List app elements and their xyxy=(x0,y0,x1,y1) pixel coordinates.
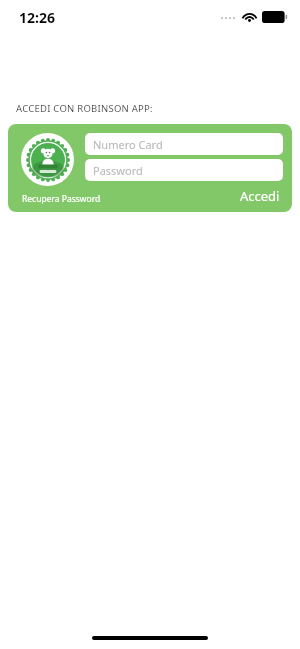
button[interactable]: Numero Card xyxy=(85,133,283,155)
staticText: Password xyxy=(93,163,143,178)
staticText: Recupera Password xyxy=(22,193,101,205)
button[interactable]: Recupera Password xyxy=(22,192,101,206)
button[interactable]: Password xyxy=(85,159,283,181)
button[interactable]: Accedi xyxy=(240,186,280,206)
staticText: Numero Card xyxy=(93,137,163,152)
staticText: ACCEDI CON ROBINSON APP: xyxy=(16,102,153,115)
staticText: Accedi xyxy=(240,187,280,205)
staticText: 12:26 xyxy=(19,8,55,27)
